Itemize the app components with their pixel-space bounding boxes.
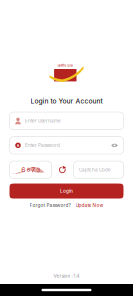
staticText: Login to Your Account (30, 97, 102, 105)
staticText: Update Now (75, 203, 103, 208)
button[interactable]: Forgot Password? (29, 203, 70, 208)
staticText: Login (60, 188, 73, 194)
button[interactable]: Enter Password (9, 137, 123, 154)
staticText: 6 (21, 166, 25, 174)
staticText: Forgot Password? (29, 203, 70, 208)
button[interactable]: Update Now (75, 203, 103, 208)
staticText: भारतीय डाक (57, 63, 73, 68)
button[interactable]: Captcha Code (73, 161, 123, 179)
staticText: Version : 1.4 (53, 273, 79, 279)
staticText: Enter Password (25, 142, 60, 148)
staticText: 6 (27, 167, 30, 173)
button[interactable]: Refresh captcha (51, 161, 73, 179)
staticText: Enter Username (25, 118, 61, 124)
button[interactable]: Login (9, 184, 123, 199)
button[interactable]: Enter Username (9, 112, 123, 130)
staticText: 7 (31, 166, 35, 174)
staticText: Captcha Code (79, 167, 111, 173)
staticText: 3 (37, 167, 40, 173)
